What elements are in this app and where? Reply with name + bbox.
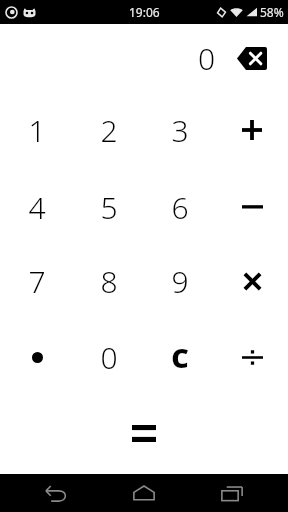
staticText: 9 bbox=[171, 261, 189, 302]
button[interactable]: 9 bbox=[144, 253, 216, 309]
button[interactable]: Back bbox=[24, 474, 88, 512]
staticText: 7 bbox=[28, 261, 46, 302]
staticText: 6 bbox=[171, 187, 189, 228]
button[interactable]: 6 bbox=[144, 179, 216, 235]
button[interactable]: 0 bbox=[73, 329, 145, 385]
staticText: 8 bbox=[100, 261, 118, 302]
staticText: 1 bbox=[28, 110, 46, 151]
button[interactable]: 3 bbox=[144, 102, 216, 158]
staticText: 3 bbox=[171, 110, 189, 151]
button[interactable] bbox=[216, 179, 288, 235]
button[interactable]: Backspace bbox=[236, 45, 268, 71]
staticText: 19:06 bbox=[129, 4, 160, 20]
staticText: 4 bbox=[28, 187, 46, 228]
staticText: 58% bbox=[260, 4, 284, 20]
staticText: 5 bbox=[100, 187, 118, 228]
button[interactable]: Home bbox=[112, 474, 176, 512]
button[interactable] bbox=[114, 410, 174, 456]
button[interactable]: C bbox=[144, 329, 216, 385]
staticText: 2 bbox=[100, 110, 118, 151]
button[interactable] bbox=[216, 102, 288, 158]
button[interactable]: 1 bbox=[1, 102, 73, 158]
button[interactable]: 2 bbox=[73, 102, 145, 158]
button[interactable]: 5 bbox=[73, 179, 145, 235]
button[interactable]: 7 bbox=[1, 253, 73, 309]
button[interactable] bbox=[1, 329, 73, 385]
staticText: 0 bbox=[100, 337, 118, 378]
staticText: C bbox=[171, 339, 189, 376]
button[interactable]: 4 bbox=[1, 179, 73, 235]
button[interactable] bbox=[216, 329, 288, 385]
staticText: 0 bbox=[198, 38, 216, 79]
button[interactable]: 8 bbox=[73, 253, 145, 309]
button[interactable]: Recent apps bbox=[200, 474, 264, 512]
button[interactable] bbox=[216, 253, 288, 309]
